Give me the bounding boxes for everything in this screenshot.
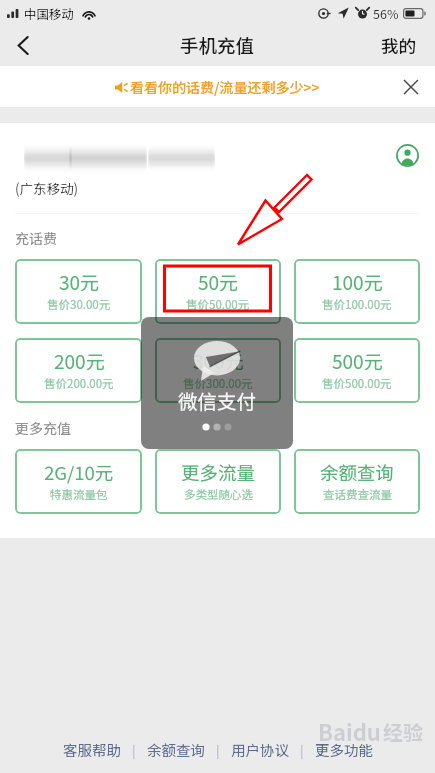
staticText: 更多充值 <box>15 418 71 438</box>
button[interactable]: 更多流量 <box>155 449 281 514</box>
button[interactable]: 我的 <box>362 25 435 66</box>
staticText: 微信支付 <box>178 386 257 414</box>
staticText: 售价50.00元 <box>186 296 250 313</box>
button[interactable]: 余额查询 <box>145 735 207 764</box>
staticText: 手机充值 <box>180 32 255 59</box>
staticText: 更多功能 <box>315 739 373 760</box>
button[interactable]: 500元 <box>294 338 420 403</box>
staticText: 余额查询 <box>320 459 395 486</box>
button[interactable]: 200元 <box>15 338 142 403</box>
button[interactable]: Close banner <box>396 72 426 102</box>
button[interactable]: 50元 <box>155 259 281 324</box>
button[interactable]: 余额查询 <box>294 449 420 514</box>
button[interactable]: 100元 <box>294 259 420 324</box>
button[interactable]: 30元 <box>15 259 142 324</box>
staticText: 更多流量 <box>181 459 256 486</box>
staticText: 50元 <box>198 268 239 296</box>
staticText: 经验 <box>383 717 423 746</box>
button[interactable]: 更多功能 <box>313 735 375 764</box>
button[interactable]: 用户协议 <box>229 735 291 764</box>
staticText: 300元 <box>193 347 244 375</box>
button[interactable]: Back <box>0 25 46 66</box>
staticText: 售价30.00元 <box>47 296 111 313</box>
staticText: 客服帮助 <box>63 739 121 760</box>
staticText: 30元 <box>59 268 100 296</box>
staticText: 200元 <box>54 347 105 375</box>
staticText: 售价500.00元 <box>322 375 392 392</box>
staticText: 售价100.00元 <box>322 296 392 313</box>
staticText: | <box>132 740 136 759</box>
button[interactable]: 2G/10元 <box>15 449 142 514</box>
staticText: (广东移动) <box>15 178 79 198</box>
staticText: 充话费 <box>15 228 57 248</box>
button[interactable]: 客服帮助 <box>61 735 123 764</box>
staticText: 多类型随心选 <box>184 486 253 503</box>
button[interactable]: 300元 <box>155 338 281 403</box>
staticText: 500元 <box>332 347 383 375</box>
staticText: 我的 <box>381 33 416 58</box>
staticText: 售价200.00元 <box>44 375 114 392</box>
staticText: 看看你的话费/流量还剩多少>> <box>130 77 320 97</box>
staticText: 中国移动 <box>24 4 75 22</box>
staticText: Baidu <box>318 715 381 747</box>
staticText: 2G/10元 <box>44 459 114 486</box>
staticText: | <box>300 740 304 759</box>
staticText: 售价300.00元 <box>183 375 253 392</box>
staticText: 56% <box>373 4 399 22</box>
staticText: | <box>216 740 220 759</box>
staticText: 余额查询 <box>147 739 205 760</box>
button[interactable]: 看看你的话费/流量还剩多少>> <box>115 77 320 97</box>
button[interactable]: Contacts <box>396 144 419 167</box>
staticText: 100元 <box>332 268 383 296</box>
staticText: 特惠流量包 <box>50 486 108 503</box>
staticText: 用户协议 <box>231 739 289 760</box>
staticText: 查话费查流量 <box>323 486 392 503</box>
